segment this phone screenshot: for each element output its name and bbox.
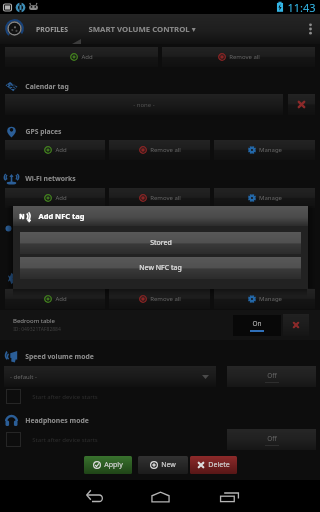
button[interactable]: Delete tag bbox=[283, 314, 309, 336]
button[interactable]: Stored bbox=[20, 232, 301, 254]
button[interactable]: - none - bbox=[5, 94, 283, 115]
staticText: Calendar tag bbox=[25, 82, 69, 91]
button[interactable]: Speed volume mode bbox=[4, 348, 320, 364]
button[interactable]: Delete bbox=[190, 456, 237, 474]
button[interactable]: Off bbox=[227, 429, 316, 450]
button[interactable]: Add bbox=[5, 140, 105, 160]
staticText: Speed volume mode bbox=[25, 352, 94, 361]
staticText: Headphones mode bbox=[25, 416, 89, 425]
button[interactable]: Manage bbox=[214, 140, 315, 160]
staticText: Add bbox=[55, 146, 67, 154]
button[interactable]: Manage bbox=[214, 289, 315, 309]
staticText: Bluetooth devices bbox=[25, 274, 86, 283]
button[interactable]: Bedroom table bbox=[0, 310, 320, 340]
staticText: Add NFC tag bbox=[38, 211, 85, 221]
button[interactable]: Home bbox=[139, 480, 181, 512]
staticText: Apply bbox=[104, 460, 123, 470]
staticText: New NFC tag bbox=[139, 263, 182, 273]
button[interactable]: New bbox=[138, 456, 188, 474]
button[interactable]: Remove calendar tag bbox=[288, 94, 315, 115]
button[interactable]: Remove all bbox=[109, 140, 210, 160]
staticText: GPS places bbox=[25, 127, 62, 136]
staticText: Add bbox=[81, 53, 93, 61]
staticText: Remove all bbox=[150, 295, 181, 303]
staticText: NFC tags bbox=[25, 224, 56, 233]
button[interactable]: Headphones mode bbox=[4, 412, 320, 428]
staticText: PROFILES bbox=[36, 25, 68, 34]
button[interactable]: New NFC tag bbox=[20, 257, 301, 279]
button[interactable]: Remove all bbox=[109, 289, 210, 309]
button[interactable]: Manage bbox=[214, 188, 315, 208]
button[interactable]: Apply bbox=[84, 456, 132, 474]
button[interactable]: Bluetooth devices bbox=[4, 270, 320, 286]
button[interactable] bbox=[6, 389, 21, 404]
staticText: New bbox=[161, 460, 176, 470]
staticText: Add bbox=[55, 194, 67, 202]
button[interactable] bbox=[6, 432, 21, 447]
button[interactable]: More options bbox=[300, 14, 320, 44]
button[interactable]: Off bbox=[227, 366, 316, 387]
staticText: Add bbox=[55, 295, 67, 303]
staticText: Manage bbox=[259, 194, 282, 202]
staticText: Stored bbox=[150, 238, 172, 248]
staticText: SMART VOLUME CONTROL ▾ bbox=[88, 24, 196, 35]
staticText: Bedroom table bbox=[13, 317, 55, 325]
button[interactable]: Wi-Fi networks bbox=[4, 170, 320, 186]
staticText: Off bbox=[267, 434, 277, 443]
button[interactable]: Add bbox=[5, 289, 105, 309]
staticText: - none - bbox=[133, 101, 155, 109]
button[interactable]: On bbox=[233, 315, 281, 336]
staticText: - default - bbox=[10, 373, 37, 381]
button[interactable]: Back bbox=[72, 480, 114, 512]
staticText: Off bbox=[267, 371, 277, 380]
staticText: Wi-Fi networks bbox=[25, 174, 76, 183]
button[interactable]: Remove all bbox=[109, 188, 210, 208]
button[interactable]: Add bbox=[5, 47, 158, 67]
staticText: Remove all bbox=[150, 194, 181, 202]
staticText: On bbox=[252, 319, 262, 328]
button[interactable]: Recent apps bbox=[208, 480, 250, 512]
staticText: Start after device starts bbox=[32, 436, 98, 444]
staticText: Manage bbox=[259, 295, 282, 303]
staticText: Delete bbox=[208, 460, 230, 470]
staticText: Remove all bbox=[229, 53, 260, 61]
staticText: Remove all bbox=[150, 146, 181, 154]
button[interactable]: Add bbox=[5, 188, 105, 208]
button[interactable]: - default - bbox=[4, 366, 216, 387]
button[interactable]: Calendar tag bbox=[4, 78, 320, 94]
staticText: 11:43 bbox=[287, 0, 316, 14]
button[interactable]: Remove all bbox=[162, 47, 315, 67]
button[interactable]: GPS places bbox=[4, 123, 320, 139]
staticText: Manage bbox=[259, 146, 282, 154]
staticText: ID: 049321TAF82884 bbox=[13, 326, 61, 333]
staticText: Start after device starts bbox=[32, 393, 98, 401]
button[interactable]: NFC tags bbox=[4, 220, 320, 236]
